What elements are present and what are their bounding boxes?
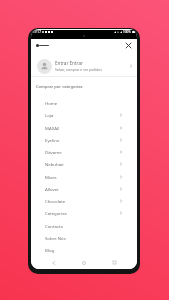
button[interactable]: Loja (31, 109, 137, 121)
staticText: Chocolate (45, 198, 66, 204)
staticText: Comprar por categorias (36, 84, 83, 90)
staticText: Sobre Nós (45, 235, 66, 241)
staticText: Eyeline (45, 137, 60, 143)
button[interactable]: Dávame (31, 146, 137, 158)
button[interactable]: Eyeline (31, 134, 137, 146)
button[interactable]: Allover (31, 183, 137, 195)
button[interactable]: Blog (31, 244, 137, 256)
button[interactable]: Sobre Nós (31, 232, 137, 244)
staticText: Home (45, 100, 58, 106)
button[interactable]: Nebuhair (31, 158, 137, 170)
button[interactable]: Back (47, 256, 61, 269)
staticText: Loja (45, 112, 54, 118)
button[interactable]: Close (123, 40, 134, 51)
staticText: Dávame (45, 149, 62, 155)
button[interactable]: MAXAE (31, 122, 137, 134)
staticText: 100% (123, 30, 131, 34)
button[interactable]: Home (77, 256, 91, 269)
staticText: Allover (45, 186, 59, 192)
button[interactable]: Categorias (31, 207, 137, 219)
button[interactable]: Home (31, 97, 137, 109)
staticText: MAXAE (45, 125, 60, 131)
staticText: Categorias (45, 210, 67, 216)
staticText: Salvar, comprar e ver pedidos (55, 67, 102, 72)
button[interactable]: Mixes (31, 171, 137, 183)
button[interactable]: Contacto (31, 220, 137, 232)
button[interactable]: Recents (107, 256, 121, 269)
staticText: 17:17 (33, 30, 41, 34)
staticText: Mixes (45, 174, 57, 180)
staticText: Contacto (45, 223, 64, 229)
button[interactable]: Chocolate (31, 195, 137, 207)
staticText: Nebuhair (45, 161, 64, 167)
button[interactable]: Logo (36, 44, 49, 47)
staticText: Blog (45, 247, 55, 253)
staticText: Entrar Entrar (55, 60, 83, 66)
button[interactable]: Entrar Entrar (31, 52, 137, 76)
